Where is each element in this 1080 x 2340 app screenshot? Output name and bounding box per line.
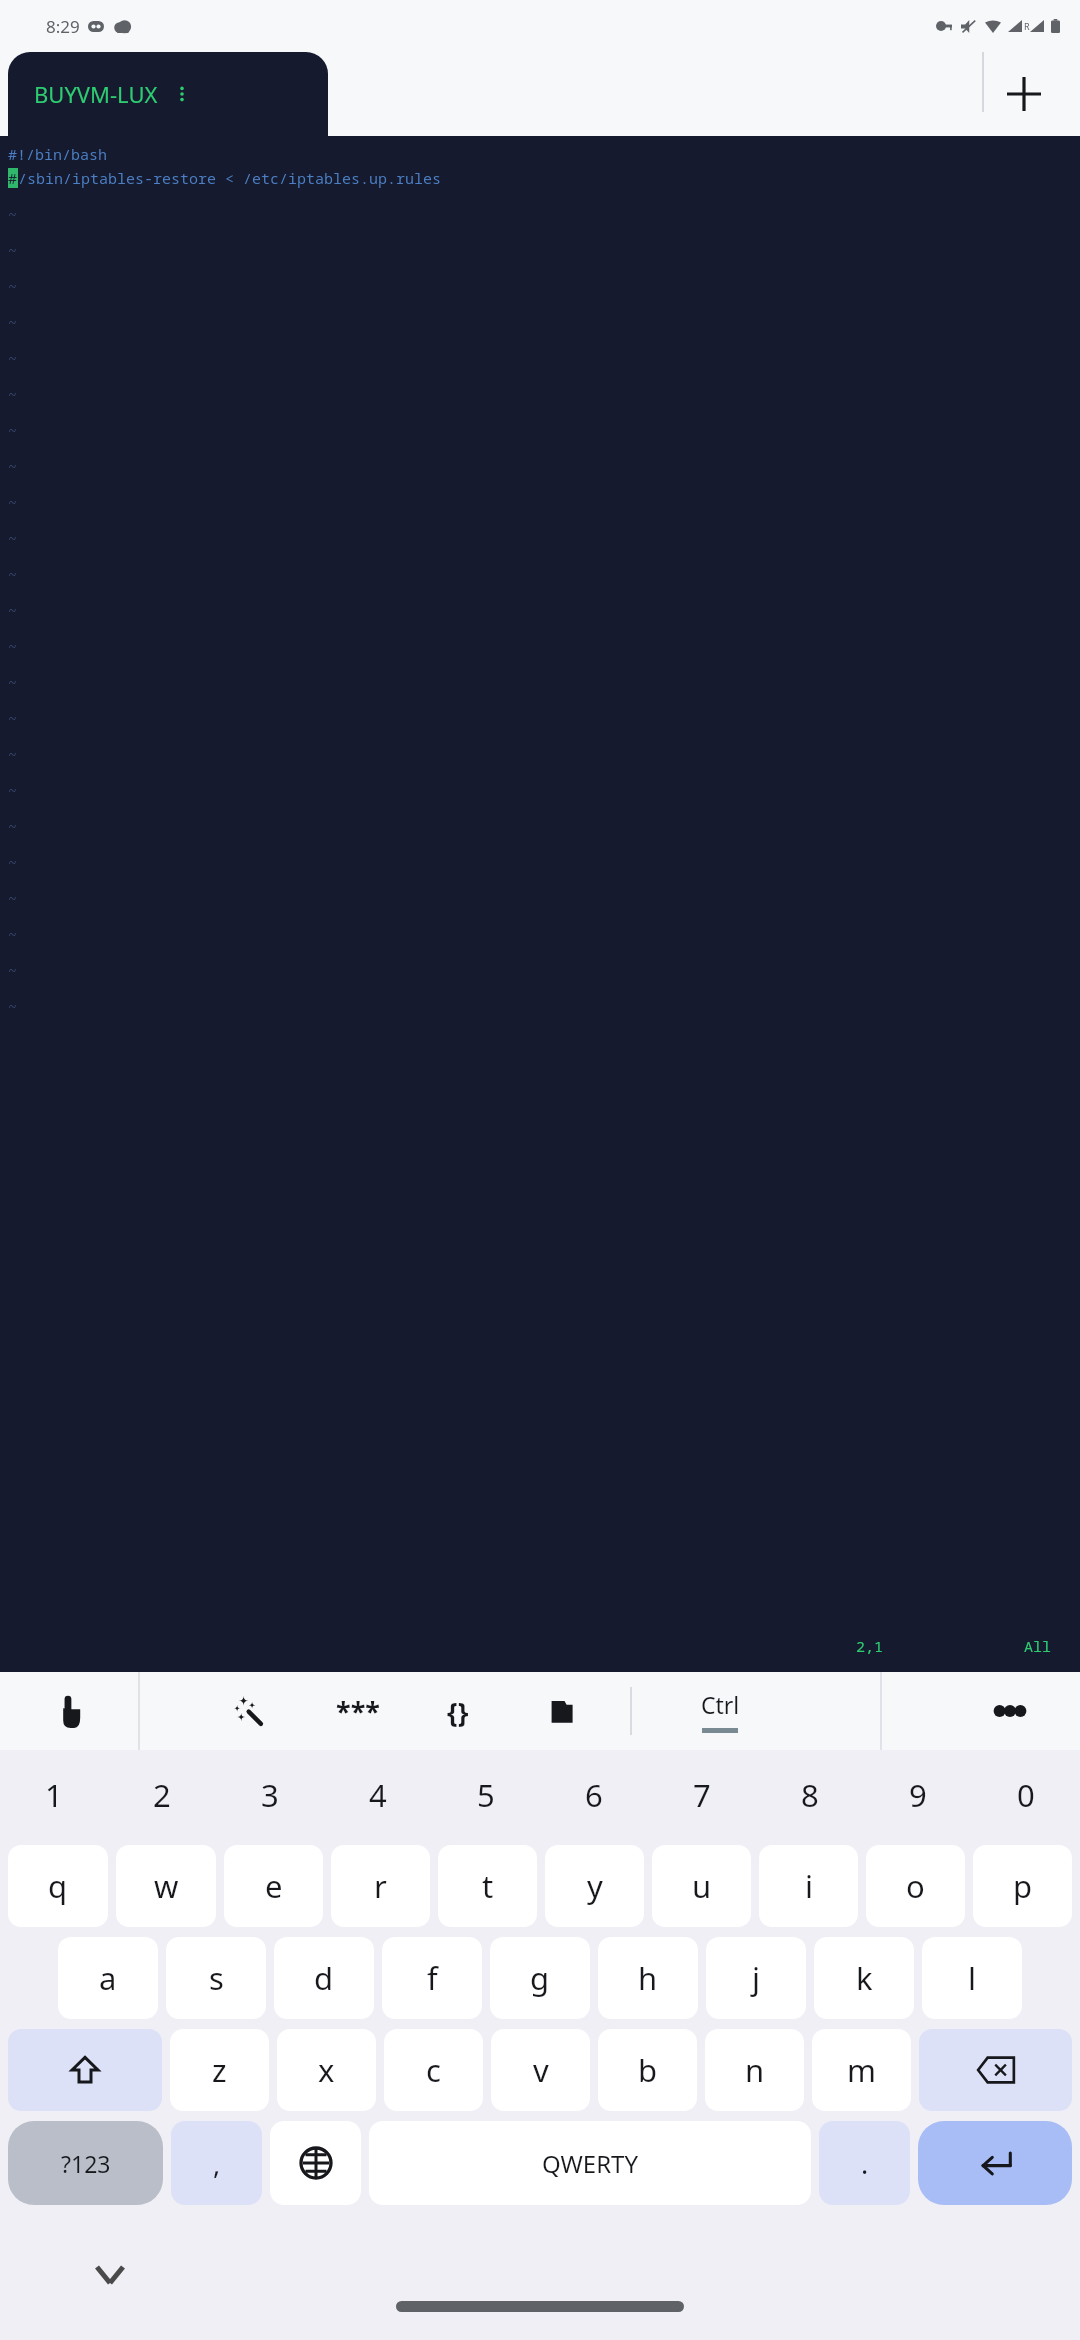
button[interactable]: New session — [996, 66, 1052, 122]
button[interactable]: h — [598, 1937, 698, 2019]
button[interactable]: Braces — [400, 1672, 515, 1750]
button[interactable]: . — [819, 2121, 910, 2205]
staticText: ~ — [8, 276, 18, 296]
button[interactable]: 6 — [540, 1750, 648, 1840]
staticText: u — [692, 1865, 712, 1907]
button[interactable]: Hide keyboard — [80, 2245, 140, 2305]
button[interactable]: i — [759, 1845, 858, 1927]
button[interactable]: 9 — [864, 1750, 972, 1840]
button[interactable]: o — [866, 1845, 965, 1927]
staticText: ~ — [8, 852, 18, 872]
button[interactable]: Enter — [918, 2121, 1072, 2205]
staticText: 9 — [909, 1774, 927, 1816]
button[interactable]: b — [598, 2029, 697, 2111]
button[interactable]: l — [922, 1937, 1022, 2019]
staticText: ~ — [8, 744, 18, 764]
button[interactable]: n — [705, 2029, 804, 2111]
button[interactable]: Backspace — [919, 2029, 1072, 2111]
staticText: ~ — [8, 888, 18, 908]
button[interactable]: q — [8, 1845, 108, 1927]
staticText: ~ — [8, 204, 18, 224]
button[interactable]: 5 — [432, 1750, 540, 1840]
staticText: g — [530, 1957, 550, 1999]
staticText: 3 — [261, 1774, 279, 1816]
staticText: ~ — [8, 420, 18, 440]
staticText: ~ — [8, 780, 18, 800]
staticText: ~ — [8, 492, 18, 512]
button[interactable]: 7 — [648, 1750, 756, 1840]
button[interactable]: j — [706, 1937, 806, 2019]
staticText: ~ — [8, 924, 18, 944]
button[interactable]: t — [438, 1845, 537, 1927]
button[interactable]: More — [940, 1672, 1080, 1750]
staticText: l — [968, 1957, 976, 1999]
button[interactable]: k — [814, 1937, 914, 2019]
button[interactable]: QWERTY — [369, 2121, 811, 2205]
button[interactable]: Shift — [8, 2029, 162, 2111]
button[interactable]: Ctrl — [650, 1672, 790, 1750]
button[interactable]: z — [170, 2029, 269, 2111]
staticText: 1 — [45, 1774, 63, 1816]
staticText: 2 — [153, 1774, 171, 1816]
staticText: ~ — [8, 240, 18, 260]
staticText: b — [638, 2049, 658, 2091]
button[interactable]: 8 — [756, 1750, 864, 1840]
button[interactable]: m — [812, 2029, 911, 2111]
button[interactable]: 4 — [324, 1750, 432, 1840]
staticText: z — [212, 2049, 227, 2091]
button[interactable]: , — [171, 2121, 262, 2205]
staticText: t — [482, 1865, 494, 1907]
staticText: R — [1024, 20, 1030, 32]
button[interactable]: 3 — [216, 1750, 324, 1840]
staticText: x — [318, 2049, 335, 2091]
staticText: f — [427, 1957, 438, 1999]
staticText: ~ — [8, 348, 18, 368]
staticText: 2,1 — [856, 1636, 884, 1656]
staticText: h — [638, 1957, 658, 1999]
button[interactable]: a — [58, 1937, 158, 2019]
button[interactable]: ?123 — [8, 2121, 163, 2205]
staticText: *** — [336, 1693, 380, 1730]
staticText: # — [8, 168, 18, 188]
button[interactable]: e — [224, 1845, 323, 1927]
button[interactable]: Magic — [190, 1672, 305, 1750]
button[interactable]: w — [116, 1845, 216, 1927]
button[interactable]: f — [382, 1937, 482, 2019]
button[interactable]: c — [384, 2029, 483, 2111]
button[interactable]: y — [545, 1845, 644, 1927]
button[interactable]: r — [331, 1845, 430, 1927]
staticText: 6 — [585, 1774, 603, 1816]
button[interactable]: 0 — [972, 1750, 1080, 1840]
staticText: ?123 — [61, 2148, 111, 2179]
staticText: ~ — [8, 672, 18, 692]
staticText: ~ — [8, 708, 18, 728]
button[interactable]: d — [274, 1937, 374, 2019]
staticText: 7 — [693, 1774, 711, 1816]
staticText: BUYVM-LUX — [34, 79, 158, 109]
button[interactable]: Change language — [270, 2121, 361, 2205]
staticText: QWERTY — [542, 2147, 639, 2180]
button[interactable]: p — [973, 1845, 1072, 1927]
button[interactable]: Asterisks — [300, 1672, 415, 1750]
staticText: i — [805, 1865, 813, 1907]
button[interactable]: BUYVM-LUX — [8, 52, 328, 136]
staticText: r — [374, 1865, 387, 1907]
button[interactable]: s — [166, 1937, 266, 2019]
staticText: m — [847, 2049, 876, 2091]
button[interactable]: u — [652, 1845, 751, 1927]
button[interactable]: Files — [505, 1672, 620, 1750]
staticText: k — [856, 1957, 873, 1999]
button[interactable]: 1 — [0, 1750, 108, 1840]
button[interactable]: Touch mode — [0, 1672, 140, 1750]
staticText: a — [99, 1957, 117, 1999]
button[interactable]: v — [491, 2029, 590, 2111]
staticText: 8:29 — [46, 15, 80, 38]
staticText: /sbin/iptables-restore < /etc/iptables.u… — [18, 168, 442, 188]
staticText: o — [906, 1865, 925, 1907]
staticText: d — [314, 1957, 334, 1999]
staticText: ~ — [8, 528, 18, 548]
button[interactable]: x — [277, 2029, 376, 2111]
staticText: All — [1024, 1636, 1052, 1656]
button[interactable]: g — [490, 1937, 590, 2019]
button[interactable]: 2 — [108, 1750, 216, 1840]
